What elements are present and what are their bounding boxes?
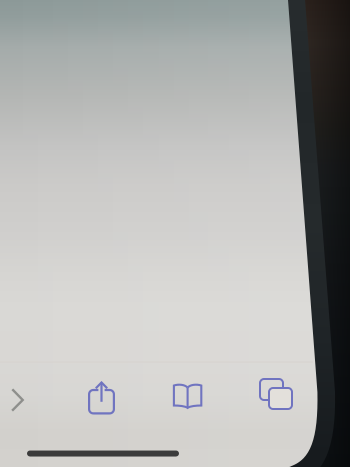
button[interactable]: Tabs: [252, 371, 300, 417]
button[interactable]: Bookmarks: [164, 373, 212, 419]
button[interactable]: Forward: [0, 377, 41, 423]
button[interactable]: Share: [77, 374, 125, 420]
